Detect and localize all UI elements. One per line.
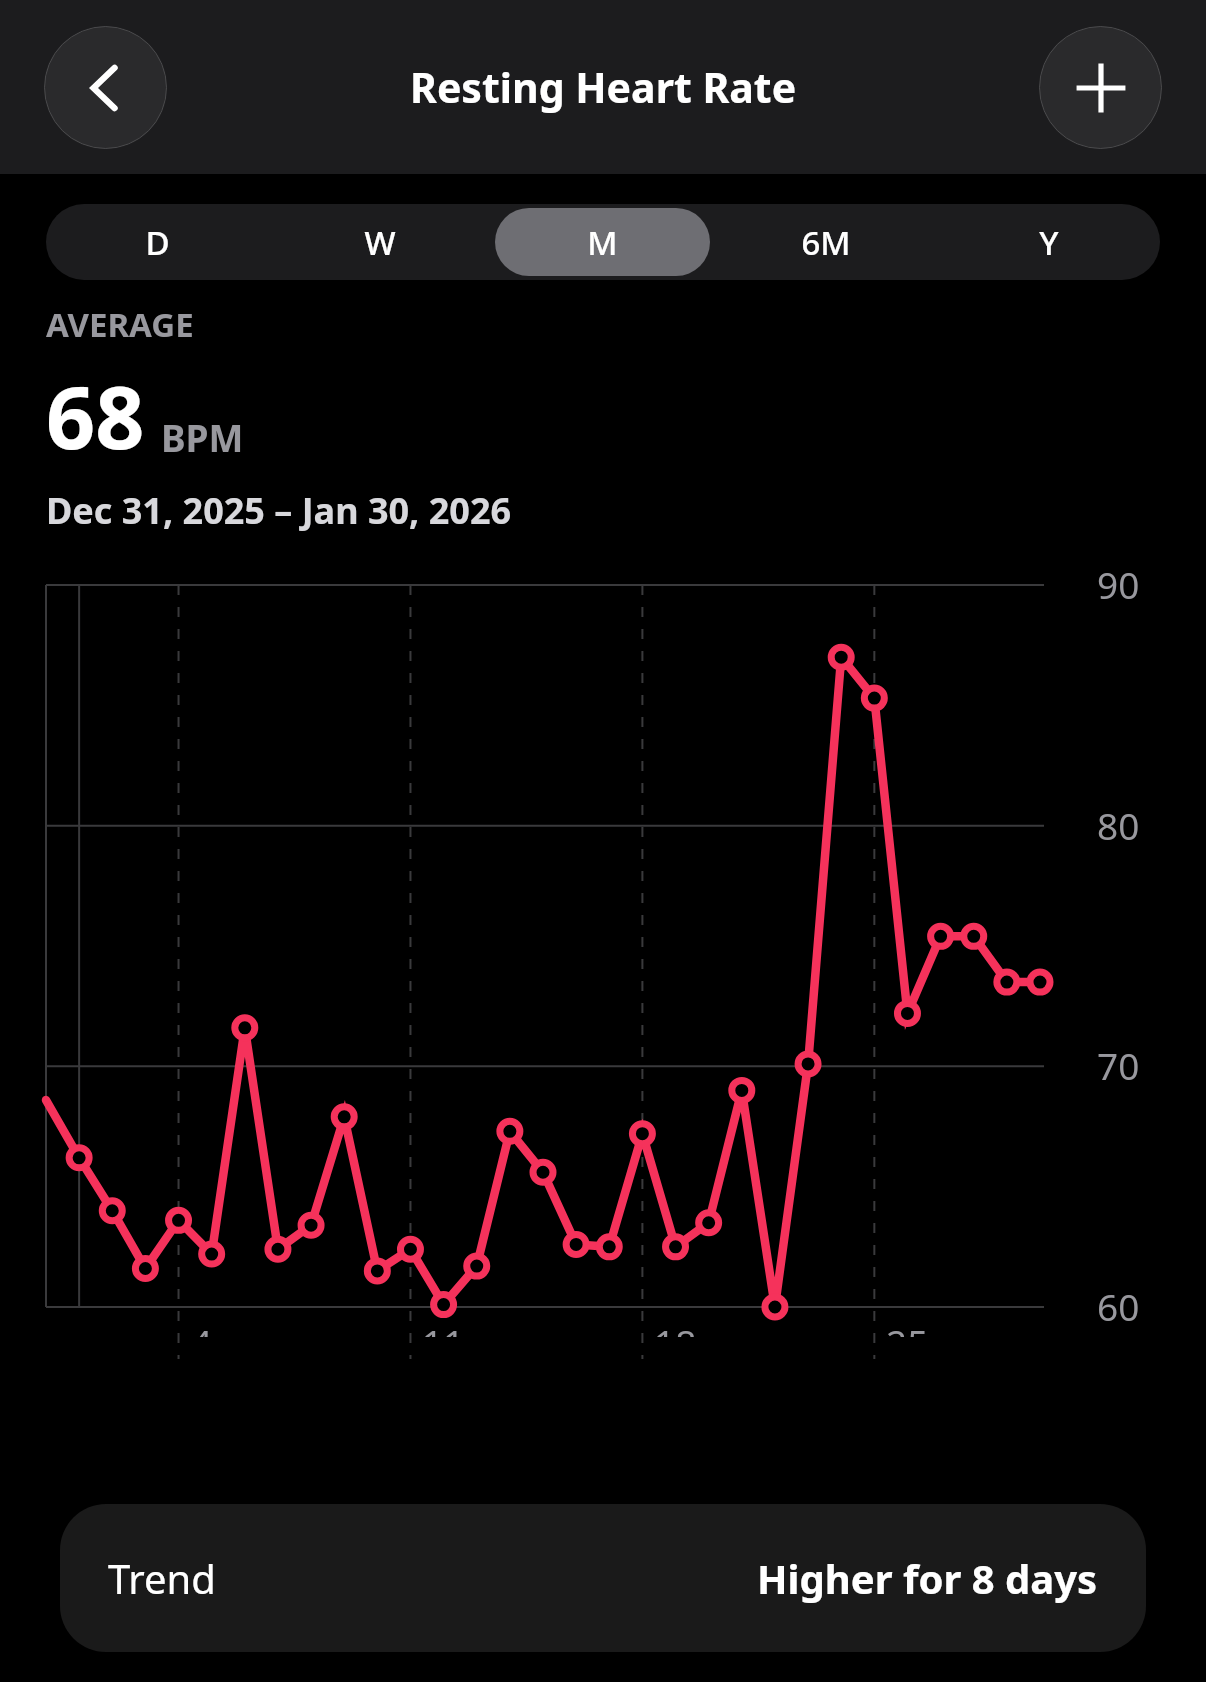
button[interactable]: W: [272, 208, 487, 276]
staticText: BPM: [161, 412, 244, 462]
staticText: 70: [1097, 1040, 1140, 1090]
button[interactable]: Add: [1039, 26, 1162, 149]
staticText: 4: [191, 1317, 213, 1337]
button[interactable]: 6M: [718, 208, 933, 276]
staticText: D: [145, 220, 170, 265]
staticText: AVERAGE: [46, 302, 194, 347]
staticText: Resting Heart Rate: [410, 59, 797, 115]
staticText: 80: [1097, 800, 1140, 850]
staticText: M: [587, 220, 618, 265]
staticText: 60: [1097, 1281, 1140, 1331]
staticText: W: [364, 220, 396, 265]
staticText: 18: [654, 1317, 697, 1337]
staticText: Higher for 8 days: [757, 1551, 1098, 1605]
staticText: 6M: [801, 220, 851, 265]
staticText: 25: [886, 1317, 929, 1337]
staticText: 11: [422, 1317, 465, 1337]
staticText: 90: [1097, 559, 1140, 609]
button[interactable]: Y: [941, 208, 1156, 276]
staticText: 68: [46, 357, 145, 474]
staticText: Trend: [108, 1551, 216, 1605]
button[interactable]: Back: [44, 26, 167, 149]
staticText: Dec 31, 2025 – Jan 30, 2026: [46, 486, 512, 535]
button[interactable]: M: [495, 208, 710, 276]
button[interactable]: Trend: [60, 1504, 1146, 1652]
staticText: Y: [1039, 220, 1059, 265]
button[interactable]: D: [50, 208, 264, 276]
